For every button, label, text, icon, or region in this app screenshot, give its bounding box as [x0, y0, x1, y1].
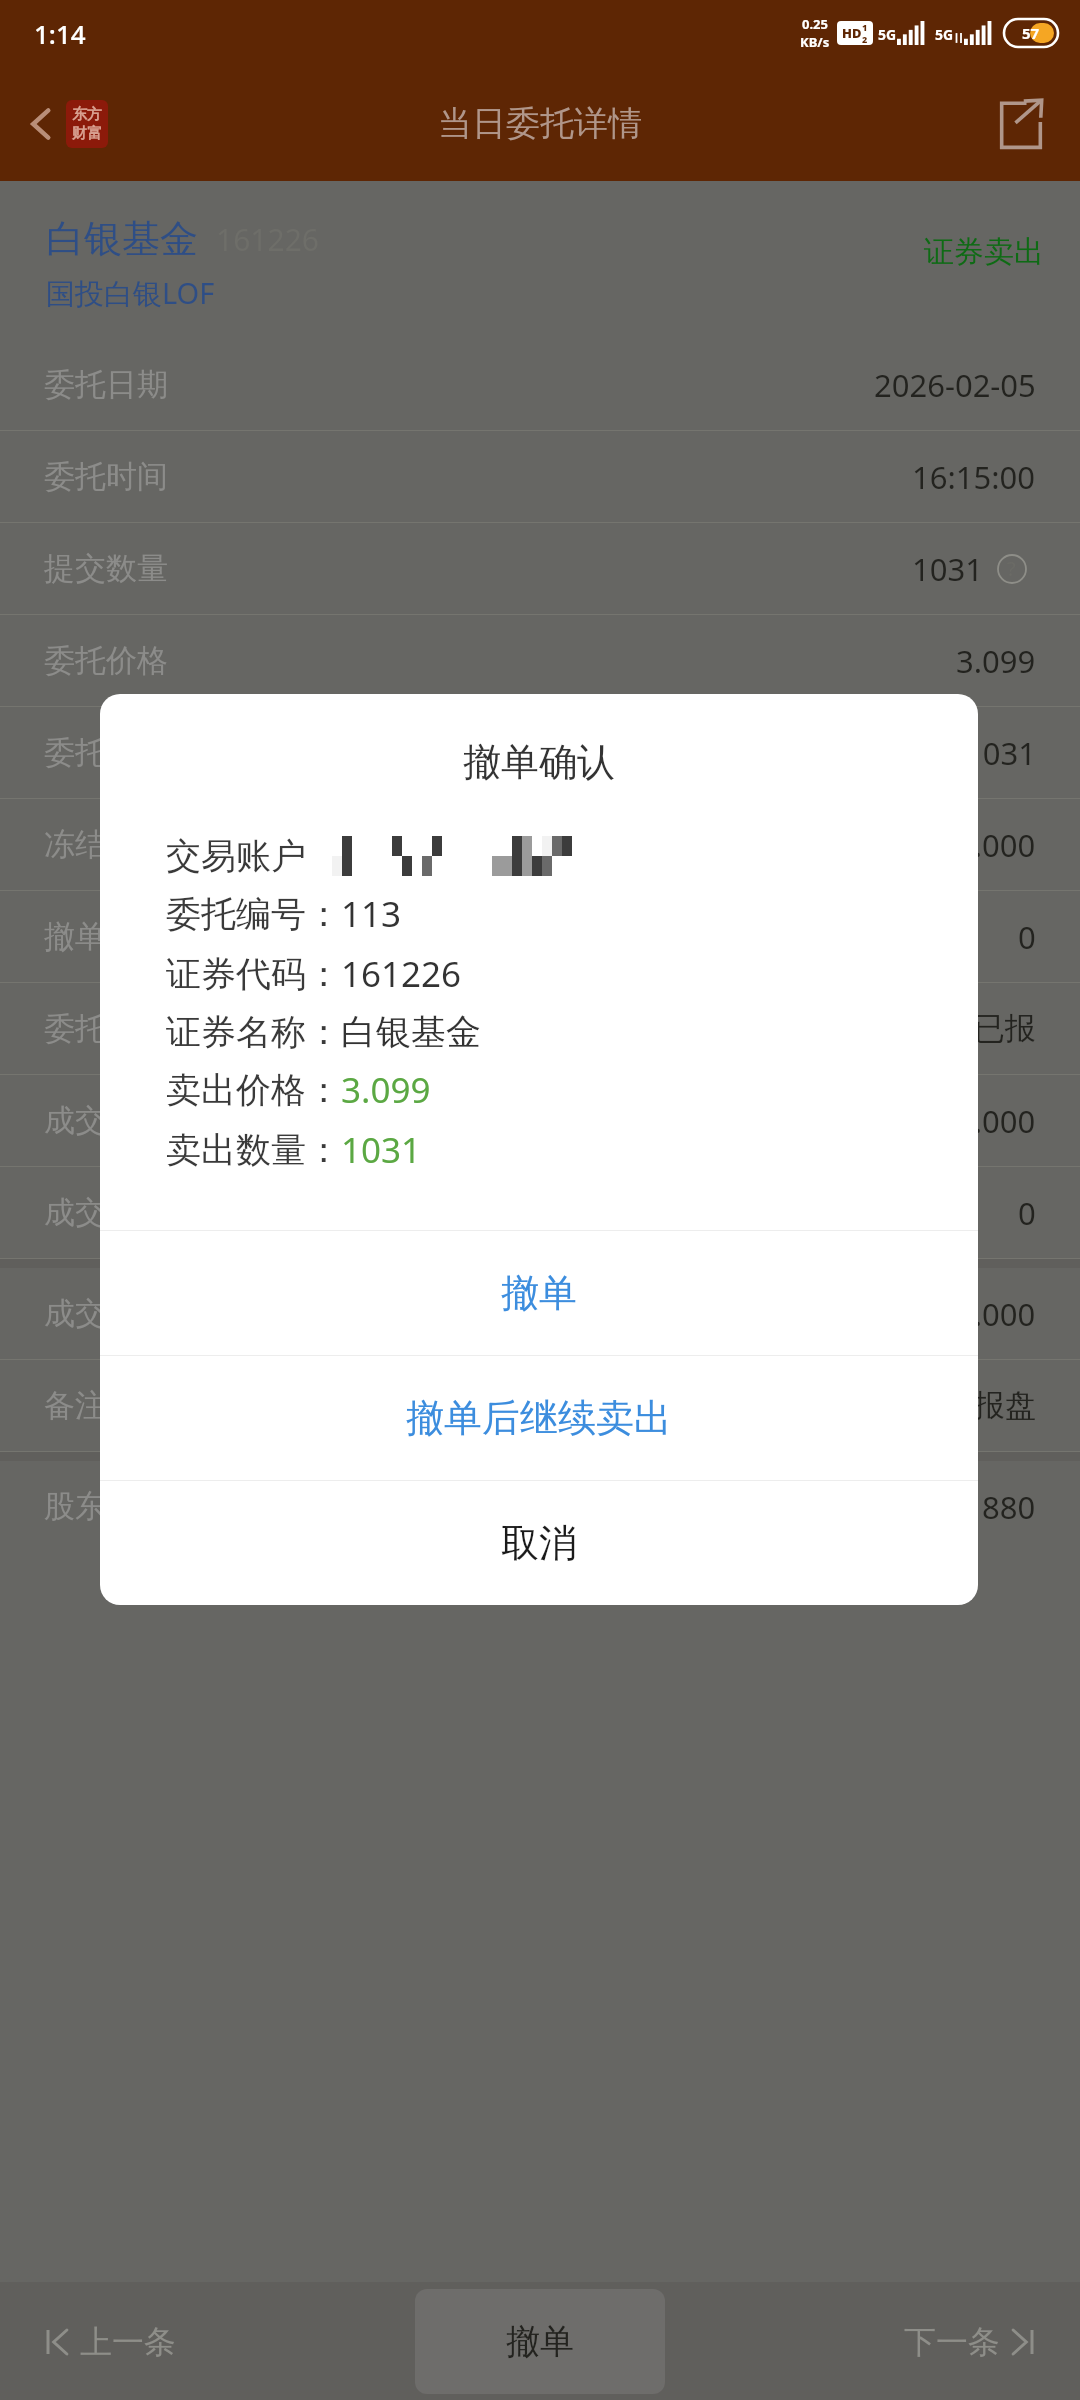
staticText: 下一条 [904, 2322, 1000, 2362]
staticText: 1 [862, 21, 868, 33]
staticText: 财富 [72, 124, 102, 143]
staticText: 撤单 [506, 2320, 574, 2363]
staticText: 委托价格 [44, 641, 168, 680]
staticText: 0.000 [956, 1100, 1036, 1142]
staticText: 161226 [341, 950, 462, 998]
button[interactable]: 成交均价 [0, 1075, 1080, 1167]
staticText: ? [1007, 555, 1016, 582]
staticText: 0.25 [802, 15, 828, 33]
staticText: 提交数量 [44, 549, 168, 588]
button[interactable]: 成交数量 [0, 1167, 1080, 1259]
staticText: 委托编号： [166, 892, 341, 936]
staticText: 0.000 [956, 1293, 1036, 1335]
staticText: 3.099 [956, 640, 1036, 682]
button[interactable]: 委托数量 [0, 707, 1080, 799]
staticText: 2026-02-05 [874, 364, 1036, 406]
staticText: 0 [1018, 916, 1036, 958]
staticText: 卖出价格： [166, 1068, 341, 1112]
staticText: 白银基金 [341, 1010, 481, 1054]
staticText: 撤单 [501, 1269, 577, 1317]
staticText: 夜市委托不报盘 [819, 1386, 1036, 1425]
staticText: 交易账户 [166, 834, 306, 878]
staticText: 白银基金 [46, 215, 198, 263]
staticText: 撤单确认 [100, 738, 978, 786]
staticText: 113 [341, 890, 402, 938]
staticText: 国投白银LOF [46, 273, 215, 313]
staticText: 撤单后继续卖出 [406, 1394, 672, 1442]
staticText: 已报 [974, 1009, 1036, 1048]
button[interactable]: 下一条 [874, 2306, 1080, 2378]
staticText: 16:15:00 [912, 456, 1036, 498]
button[interactable]: 返回 [20, 92, 116, 156]
staticText: KB/s [800, 33, 830, 51]
staticText: 委托时间 [44, 457, 168, 496]
staticText: 0.000 [956, 824, 1036, 866]
staticText: 1031 [912, 548, 983, 590]
staticText: 5G [878, 25, 897, 44]
staticText: 委托数量 [44, 733, 168, 772]
button[interactable]: 委托时间 [0, 431, 1080, 523]
staticText: 0 [1018, 1192, 1036, 1234]
button[interactable]: 成交金额 [0, 1268, 1080, 1360]
staticText: 委托状态 [44, 1009, 168, 1048]
staticText: 成交数量 [44, 1193, 168, 1232]
button[interactable]: 委托日期 [0, 339, 1080, 431]
staticText: 2 [862, 33, 868, 45]
staticText: 3.099 [341, 1066, 431, 1114]
staticText: 0905281880 [858, 1486, 1036, 1528]
staticText: 成交均价 [44, 1101, 168, 1140]
staticText: 成交金额 [44, 1294, 168, 1333]
button[interactable]: 提交数量 [0, 523, 1080, 615]
staticText: HD [842, 24, 862, 42]
button[interactable]: 冻结金额 [0, 799, 1080, 891]
staticText: 1:14 [34, 16, 86, 51]
button[interactable]: 分享 [988, 88, 1054, 160]
button[interactable]: 委托价格 [0, 615, 1080, 707]
staticText: 股东账户 [44, 1487, 168, 1526]
button[interactable]: 撤单 [415, 2289, 665, 2394]
button[interactable]: 上一条 [0, 2306, 206, 2378]
button[interactable]: 撤单后继续卖出 [100, 1356, 978, 1480]
staticText: 备注 [44, 1386, 106, 1425]
staticText: 卖出数量： [166, 1128, 341, 1172]
button[interactable]: 委托状态 [0, 983, 1080, 1075]
button[interactable]: 备注 [0, 1360, 1080, 1452]
staticText: 委托日期 [44, 365, 168, 404]
button[interactable]: 股东账户 [0, 1461, 1080, 1552]
staticText: 1031 [341, 1126, 422, 1174]
staticText: 1031 [965, 732, 1036, 774]
staticText: 证券代码： [166, 952, 341, 996]
staticText: 5G [935, 25, 954, 44]
staticText: 上一条 [80, 2322, 176, 2362]
button[interactable]: 撤单 [100, 1231, 978, 1355]
staticText: 证券名称： [166, 1010, 341, 1054]
staticText: 证券卖出 [924, 233, 1044, 271]
staticText: 当日委托详情 [438, 102, 642, 145]
staticText: 东方 [72, 105, 102, 124]
staticText: 撤单数量 [44, 917, 168, 956]
button[interactable]: 取消 [100, 1481, 978, 1605]
button[interactable]: 撤单数量 [0, 891, 1080, 983]
staticText: 57 [1022, 23, 1040, 43]
staticText: 冻结金额 [44, 825, 168, 864]
staticText: 取消 [501, 1519, 577, 1567]
